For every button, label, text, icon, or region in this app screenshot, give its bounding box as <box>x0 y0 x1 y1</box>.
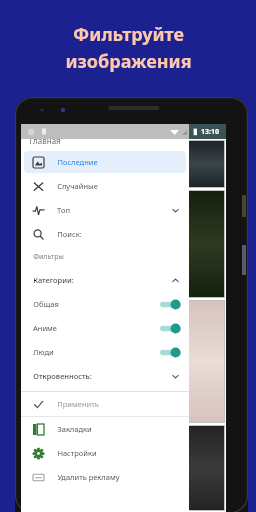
button[interactable]: Search <box>24 223 186 245</box>
other: Bookmarks <box>33 424 44 435</box>
button[interactable]: Top <box>24 199 186 221</box>
staticText: Настройки <box>57 448 97 458</box>
other: Recent <box>33 157 44 168</box>
staticText: Поиск: <box>57 229 82 239</box>
button[interactable]: Apply <box>24 393 186 415</box>
staticText: Удалить рекламу <box>57 472 120 482</box>
other: Top <box>33 205 44 216</box>
staticText: Аниме <box>33 323 57 333</box>
staticText: изображения <box>65 49 192 74</box>
staticText: Фильтруйте <box>73 22 184 47</box>
staticText: 13:10 <box>201 127 219 137</box>
button[interactable]: Категории: <box>24 269 186 291</box>
other: Apply <box>33 399 44 410</box>
other: Search <box>33 229 44 240</box>
staticText: Категории: <box>33 275 74 285</box>
staticText: Люди <box>33 347 54 357</box>
button[interactable]: Bookmarks <box>24 418 186 440</box>
button[interactable]: Settings <box>24 442 186 464</box>
staticText: Закладки <box>57 424 92 434</box>
other: Random <box>33 181 44 192</box>
staticText: Общая <box>33 299 59 309</box>
button[interactable]: Recent <box>24 151 186 173</box>
button[interactable]: Откровенность: <box>24 365 186 387</box>
staticText: Топ <box>57 205 70 215</box>
staticText: Главная <box>29 135 61 146</box>
button[interactable]: Общая <box>21 292 189 316</box>
staticText: Фильтры <box>33 252 64 262</box>
staticText: Случайные <box>57 181 98 191</box>
button[interactable]: Random <box>24 175 186 197</box>
staticText: Применить <box>57 399 99 409</box>
other: Settings <box>33 448 44 459</box>
button[interactable]: Remove ads <box>24 466 186 488</box>
button[interactable]: Люди <box>21 340 189 364</box>
button[interactable]: Аниме <box>21 316 189 340</box>
staticText: Последние <box>57 157 98 167</box>
staticText: Откровенность: <box>33 371 92 381</box>
other: Remove ads <box>33 472 44 483</box>
